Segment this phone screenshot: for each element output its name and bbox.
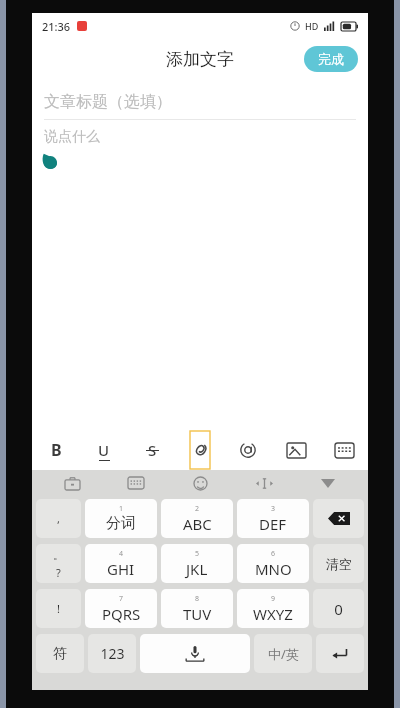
staticText: 文章标题（选填） — [44, 92, 172, 112]
button[interactable]: 123 — [88, 634, 136, 673]
button[interactable]: ! — [36, 589, 81, 628]
staticText: 中/英 — [268, 645, 299, 663]
button[interactable]: Hide keyboard — [296, 470, 360, 496]
staticText: 完成 — [318, 51, 344, 67]
staticText: PQRS — [102, 604, 141, 624]
button[interactable]: 符 — [36, 634, 84, 673]
button[interactable]: 文章标题（选填） — [44, 85, 356, 120]
staticText: ! — [57, 601, 60, 616]
button[interactable]: ⌫ — [313, 499, 364, 538]
button[interactable]: kb — [320, 430, 368, 470]
staticText: 5 — [195, 549, 200, 559]
staticText: WXYZ — [253, 604, 293, 624]
staticText: 。 ? — [53, 548, 64, 580]
staticText: 8 — [195, 594, 200, 604]
staticText: 清空 — [326, 556, 352, 572]
button[interactable]: S — [128, 430, 176, 470]
staticText: 说点什么 — [44, 128, 100, 146]
staticText: 123 — [100, 644, 125, 663]
button[interactable]: Emoji — [168, 470, 232, 496]
staticText: 0 — [334, 599, 343, 619]
button[interactable]: Keyboard settings — [104, 470, 168, 496]
staticText: 6 — [271, 549, 276, 559]
button[interactable]: MNO — [237, 544, 309, 583]
staticText: 7 — [119, 594, 124, 604]
button[interactable]: at — [224, 430, 272, 470]
staticText: U — [98, 440, 110, 460]
staticText: 1 — [119, 504, 124, 514]
button[interactable]: 。 ? — [36, 544, 81, 583]
staticText: 分词 — [106, 514, 136, 533]
button[interactable]: PQRS — [85, 589, 157, 628]
staticText: 21:36 — [42, 19, 71, 34]
button[interactable]: 0 — [313, 589, 364, 628]
button[interactable]: clip — [190, 431, 210, 469]
button[interactable]: 中/英 — [254, 634, 312, 673]
staticText: 3 — [271, 504, 276, 514]
staticText: GHI — [107, 559, 135, 579]
staticText: ABC — [183, 514, 212, 534]
staticText: S — [148, 440, 157, 460]
button[interactable]: , — [36, 499, 81, 538]
button[interactable]: ↵ — [316, 634, 364, 673]
button[interactable]: U — [80, 430, 128, 470]
button[interactable]: WXYZ — [237, 589, 309, 628]
button[interactable]: 说点什么 — [32, 120, 368, 176]
staticText: 4 — [119, 549, 124, 559]
staticText: , — [57, 511, 60, 526]
button[interactable]: img — [272, 430, 320, 470]
staticText: 符 — [53, 645, 67, 663]
button[interactable]: B — [32, 430, 80, 470]
staticText: HD — [305, 20, 319, 32]
staticText: TUV — [183, 604, 212, 624]
button[interactable]: DEF — [237, 499, 309, 538]
button[interactable]: JKL — [161, 544, 233, 583]
button[interactable]: TUV — [161, 589, 233, 628]
button[interactable]: Cursor — [232, 470, 296, 496]
button[interactable]: Clipboard — [40, 470, 104, 496]
staticText: DEF — [259, 514, 287, 534]
staticText: MNO — [255, 559, 292, 579]
staticText: 添加文字 — [166, 49, 234, 70]
button[interactable]: space — [140, 634, 250, 673]
staticText: JKL — [186, 559, 208, 579]
button[interactable]: 分词 — [85, 499, 157, 538]
button[interactable]: 完成 — [304, 46, 358, 72]
button[interactable]: GHI — [85, 544, 157, 583]
button[interactable]: ABC — [161, 499, 233, 538]
staticText: B — [51, 439, 62, 461]
staticText: 9 — [271, 594, 276, 604]
staticText: 2 — [195, 504, 200, 514]
button[interactable]: 清空 — [313, 544, 364, 583]
